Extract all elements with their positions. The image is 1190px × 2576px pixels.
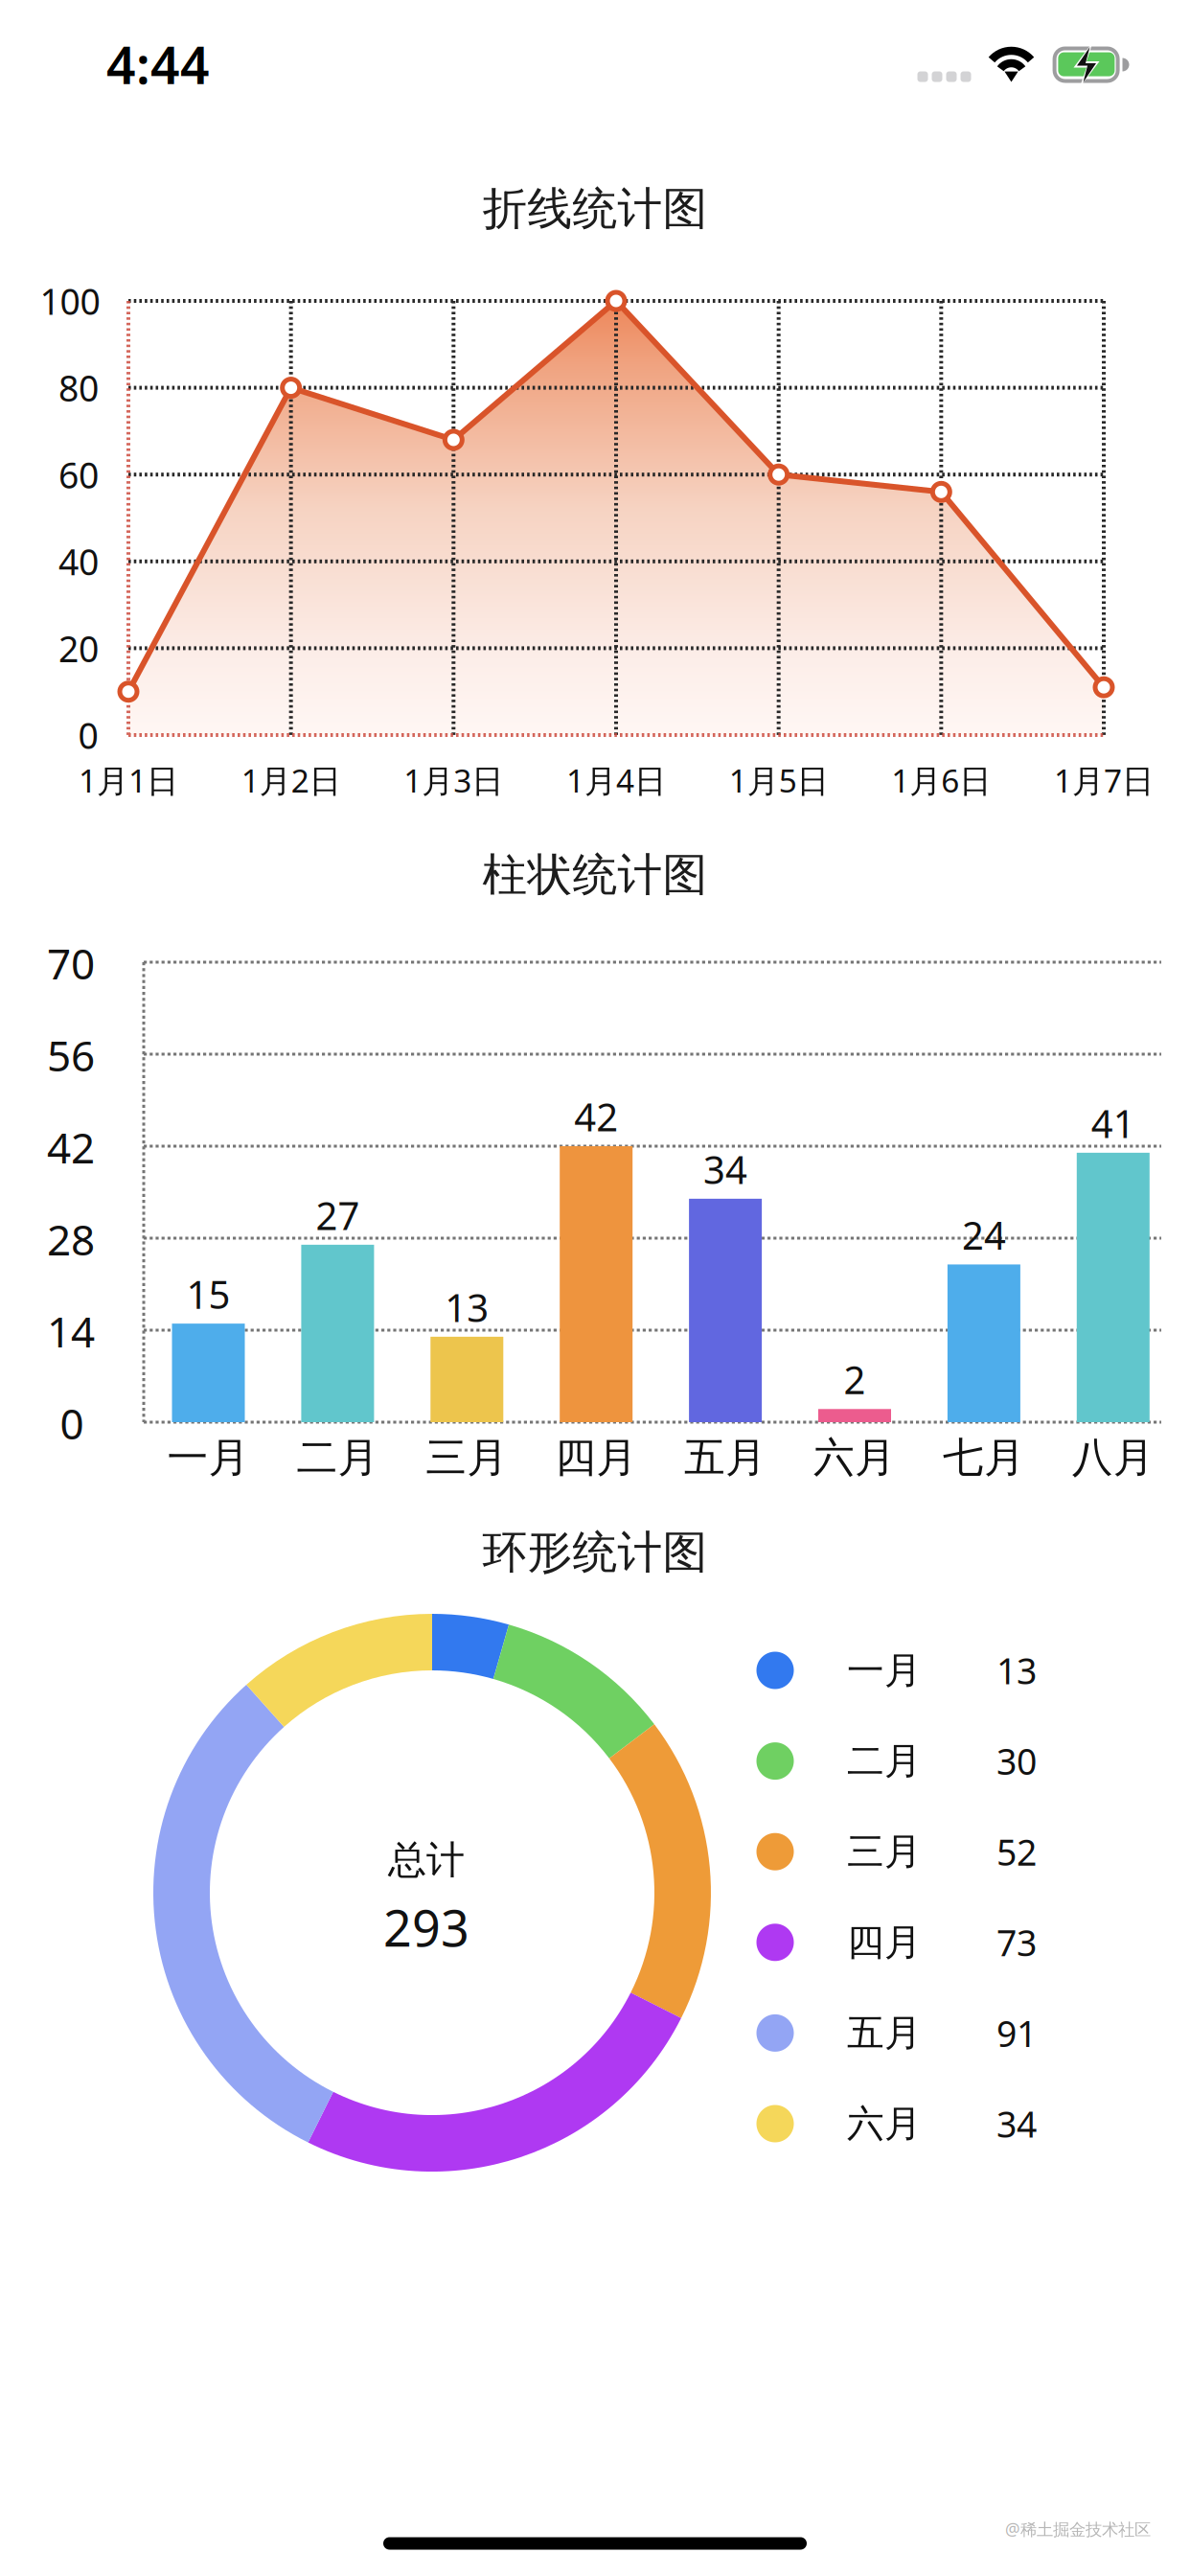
staticText: 2: [844, 1354, 866, 1405]
staticText: 13: [996, 1647, 1037, 1694]
staticText: 40: [58, 538, 99, 585]
staticText: 27: [316, 1190, 360, 1240]
staticText: 1月6日: [891, 759, 991, 801]
staticText: 五月: [684, 1433, 767, 1483]
staticText: 0: [78, 711, 98, 759]
button[interactable]: 五月: [0, 0, 1190, 2576]
staticText: 1月5日: [729, 759, 828, 801]
staticText: 24: [962, 1209, 1006, 1260]
button[interactable]: 四月: [0, 0, 1190, 2576]
staticText: @稀土掘金技术社区: [1005, 2518, 1151, 2540]
staticText: 60: [58, 451, 99, 498]
staticText: 28: [47, 1211, 95, 1267]
staticText: 52: [996, 1828, 1037, 1875]
staticText: 1月3日: [404, 759, 503, 801]
staticText: 15: [186, 1268, 230, 1319]
staticText: 41: [1091, 1098, 1135, 1148]
staticText: 一月: [847, 1648, 922, 1693]
staticText: 100: [40, 277, 100, 325]
button[interactable]: 一月: [0, 0, 1190, 2576]
staticText: 14: [47, 1303, 95, 1359]
staticText: 二月: [296, 1433, 379, 1483]
button[interactable]: 六月: [0, 0, 1190, 2576]
staticText: 20: [58, 624, 99, 672]
staticText: 34: [703, 1144, 747, 1194]
staticText: 293: [383, 1894, 469, 1960]
staticText: 56: [47, 1027, 95, 1083]
staticText: 13: [445, 1282, 489, 1332]
staticText: 三月: [847, 1829, 922, 1874]
staticText: 91: [996, 2009, 1037, 2057]
staticText: 四月: [847, 1920, 922, 1965]
staticText: 1月2日: [241, 759, 341, 801]
staticText: 三月: [426, 1433, 508, 1483]
staticText: 六月: [847, 2101, 922, 2146]
staticText: 环形统计图: [482, 1525, 708, 1580]
staticText: 总计: [388, 1837, 465, 1884]
staticText: 1月1日: [79, 759, 178, 801]
staticText: 八月: [1072, 1433, 1154, 1483]
staticText: 1月7日: [1054, 759, 1154, 801]
staticText: 1月4日: [566, 759, 666, 801]
staticText: 0: [60, 1395, 84, 1451]
staticText: 73: [996, 1919, 1037, 1966]
staticText: 柱状统计图: [482, 847, 708, 902]
button[interactable]: 二月: [0, 0, 1190, 2576]
staticText: 30: [996, 1737, 1037, 1785]
staticText: 二月: [847, 1738, 922, 1784]
button[interactable]: 三月: [0, 0, 1190, 2576]
staticText: 42: [47, 1119, 95, 1175]
staticText: 34: [996, 2100, 1037, 2147]
staticText: 七月: [943, 1433, 1025, 1483]
staticText: 四月: [555, 1433, 637, 1483]
staticText: 六月: [813, 1433, 896, 1483]
staticText: 五月: [847, 2010, 922, 2056]
staticText: 70: [47, 935, 95, 991]
staticText: 一月: [167, 1433, 250, 1483]
staticText: 42: [574, 1091, 618, 1142]
staticText: 折线统计图: [482, 181, 708, 236]
staticText: 80: [58, 364, 99, 412]
staticText: 4:44: [106, 30, 210, 98]
